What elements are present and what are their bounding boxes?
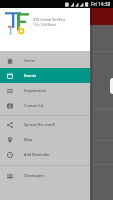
staticText: Home (24, 58, 35, 63)
button[interactable]: Contact Us (0, 98, 90, 113)
staticText: Spread the word! (24, 122, 55, 127)
staticText: Registration (24, 88, 47, 93)
staticText: Developers (24, 173, 45, 178)
button[interactable]: Add Reminder (0, 147, 90, 162)
staticText: Add Reminder (24, 152, 50, 157)
button[interactable]: Spread the word! (0, 117, 90, 132)
staticText: Map (24, 137, 33, 142)
button[interactable]: Registration (0, 83, 90, 98)
staticText: Contact Us (24, 103, 44, 108)
button[interactable]: Home (0, 53, 90, 68)
staticText: 11th-12th March (33, 23, 57, 27)
button[interactable]: Developers (0, 168, 90, 183)
staticText: Events (24, 73, 36, 78)
staticText: GTU Central TechFest (33, 18, 65, 22)
button[interactable]: GTU Central TechFest (0, 8, 90, 51)
staticText: Fri 14:38 (91, 1, 111, 8)
button[interactable]: Map (0, 132, 90, 147)
button[interactable]: Events (0, 68, 90, 83)
